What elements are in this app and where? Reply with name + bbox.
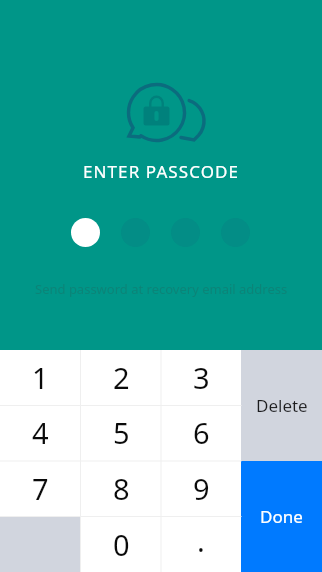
button[interactable]: 4: [0, 405, 81, 460]
button[interactable]: 3: [161, 350, 241, 405]
button[interactable]: Send password at recovery email address: [23, 275, 300, 303]
staticText: 7: [32, 469, 49, 508]
staticText: 2: [113, 358, 130, 397]
staticText: 5: [113, 413, 130, 452]
staticText: Done: [260, 505, 303, 528]
staticText: 0: [113, 525, 130, 564]
button[interactable]: .: [161, 516, 241, 572]
staticText: Send password at recovery email address: [35, 280, 288, 298]
button[interactable]: Blank key: [0, 516, 81, 572]
button[interactable]: 7: [0, 460, 81, 516]
staticText: ENTER PASSCODE: [83, 160, 240, 183]
staticText: .: [197, 521, 205, 560]
staticText: 3: [193, 358, 210, 397]
button[interactable]: 5: [81, 405, 161, 460]
button[interactable]: 6: [161, 405, 241, 460]
staticText: 8: [113, 469, 130, 508]
button[interactable]: 1: [0, 350, 81, 405]
staticText: 9: [193, 469, 210, 508]
button[interactable]: Delete: [241, 350, 322, 461]
staticText: 6: [193, 413, 210, 452]
staticText: 4: [32, 413, 49, 452]
button[interactable]: 9: [161, 460, 241, 516]
staticText: 1: [32, 358, 49, 397]
button[interactable]: 0: [81, 516, 161, 572]
staticText: Delete: [256, 394, 308, 417]
button[interactable]: Done: [241, 461, 322, 572]
button[interactable]: 2: [81, 350, 161, 405]
button[interactable]: 8: [81, 460, 161, 516]
other: Secure chat logo: [124, 80, 212, 146]
